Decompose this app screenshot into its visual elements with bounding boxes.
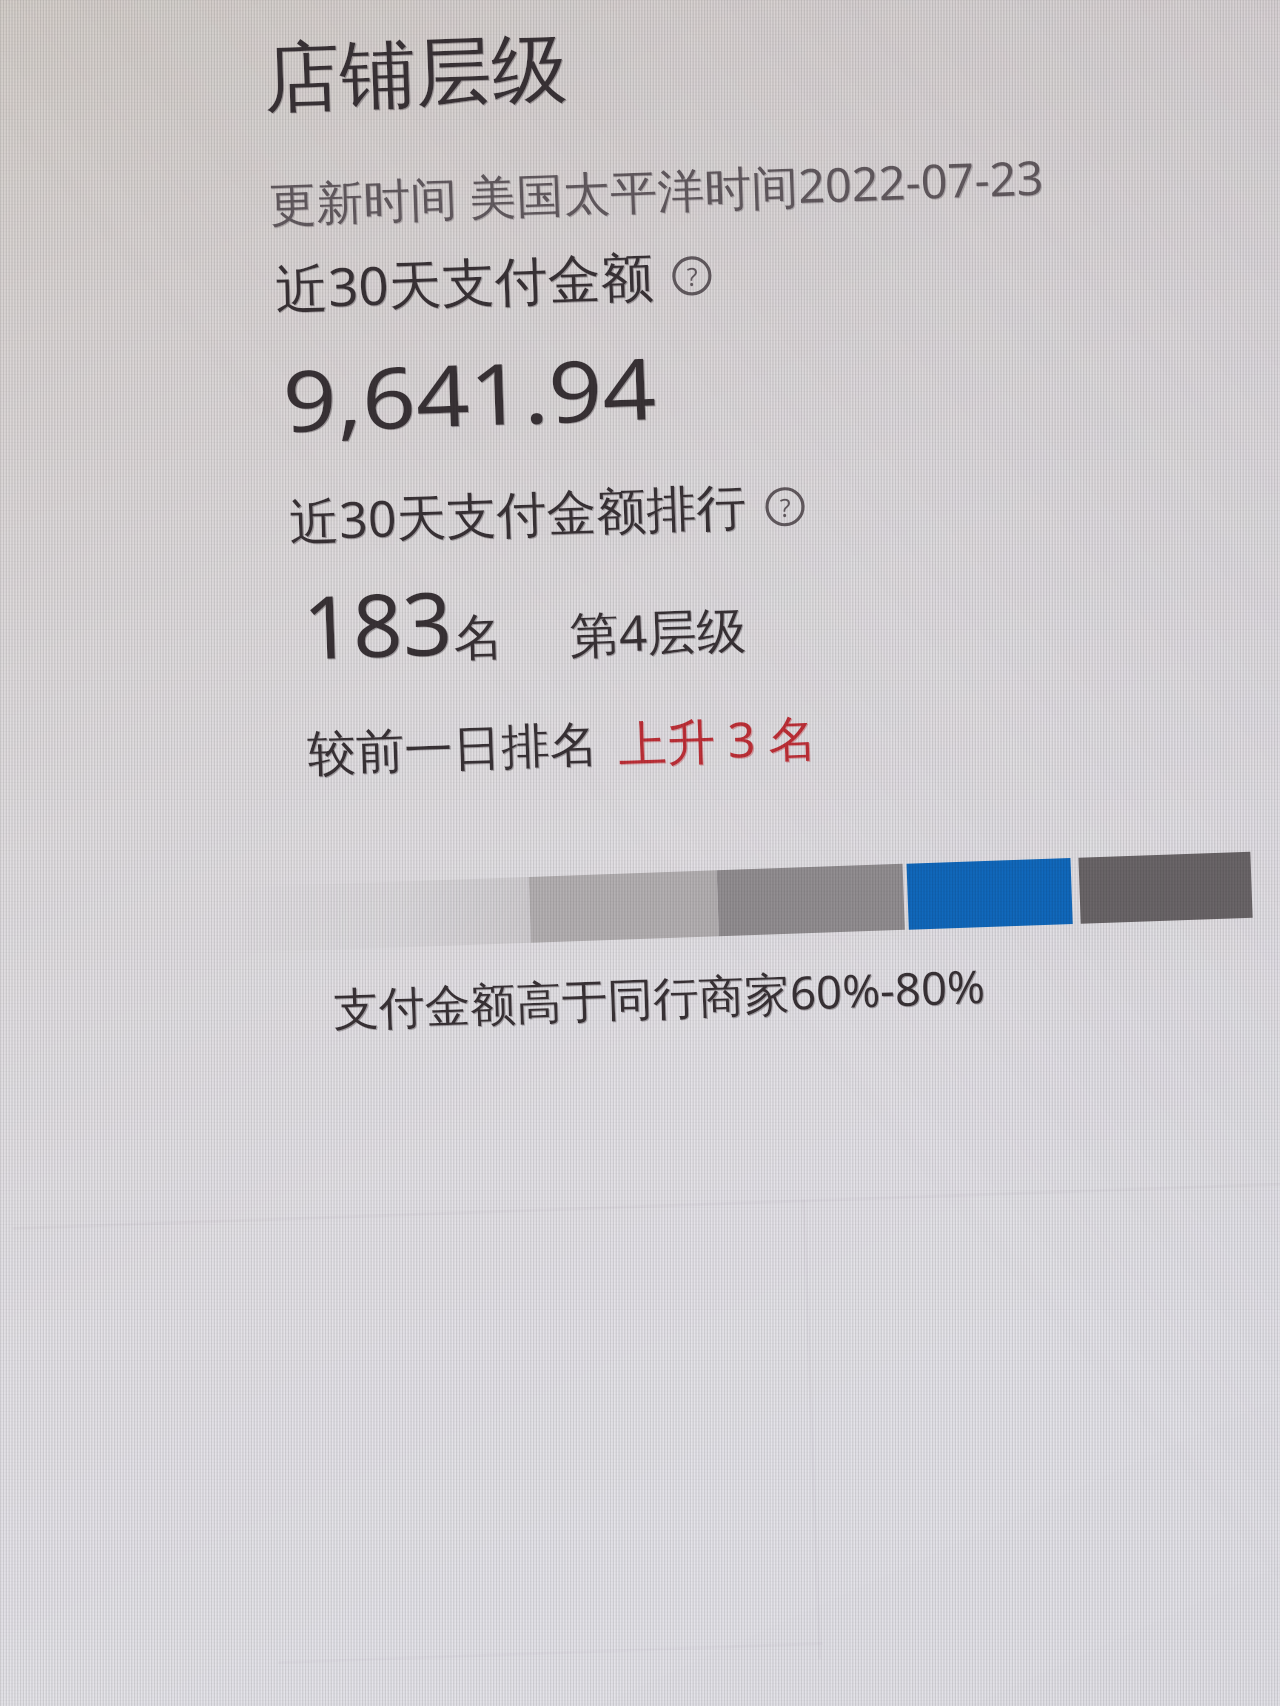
staticText: 第4层级 bbox=[569, 595, 748, 669]
button[interactable]: 183 bbox=[301, 551, 748, 685]
staticText: 9,641.94 bbox=[282, 330, 659, 458]
staticText: 店铺层级 bbox=[263, 22, 570, 129]
button[interactable]: 说明 bbox=[667, 248, 717, 298]
staticText: ? bbox=[779, 489, 792, 524]
staticText: 近30天支付金额 bbox=[274, 238, 655, 323]
staticText: 近30天支付金额排行 bbox=[289, 472, 749, 556]
button[interactable]: 店铺层级进度 bbox=[233, 852, 1253, 953]
staticText: 183 bbox=[301, 561, 455, 685]
button[interactable]: 说明 bbox=[760, 479, 810, 528]
staticText: 名 bbox=[453, 607, 505, 671]
staticText: 9,641.94 bbox=[281, 329, 658, 457]
staticText: ? bbox=[686, 259, 698, 293]
staticText: 第4层级 bbox=[568, 594, 747, 668]
staticText: 店铺层级 bbox=[262, 21, 569, 128]
staticText: 较前一日排名 bbox=[306, 713, 599, 784]
button[interactable]: 较前一日排名 bbox=[306, 703, 818, 787]
button[interactable]: 近30天支付金额排行 bbox=[288, 469, 810, 555]
staticText: 183 bbox=[302, 562, 456, 686]
staticText: 更新时间 美国太平洋时间2022-07-23 bbox=[268, 144, 1045, 235]
staticText: 支付金额高于同行商家60%-80% bbox=[333, 955, 988, 1040]
staticText: 上升 3 名 bbox=[618, 704, 819, 777]
button[interactable]: 近30天支付金额 bbox=[274, 236, 717, 323]
staticText: 支付金额高于同行商家60%-80% bbox=[332, 954, 987, 1039]
staticText: 更新时间 美国太平洋时间2022-07-23 bbox=[269, 145, 1046, 236]
staticText: 近30天支付金额 bbox=[275, 239, 656, 324]
staticText: 上升 3 名 bbox=[617, 703, 818, 776]
staticText: 名 bbox=[452, 606, 504, 670]
staticText: 近30天支付金额排行 bbox=[288, 471, 748, 555]
staticText: 较前一日排名 bbox=[307, 714, 600, 785]
